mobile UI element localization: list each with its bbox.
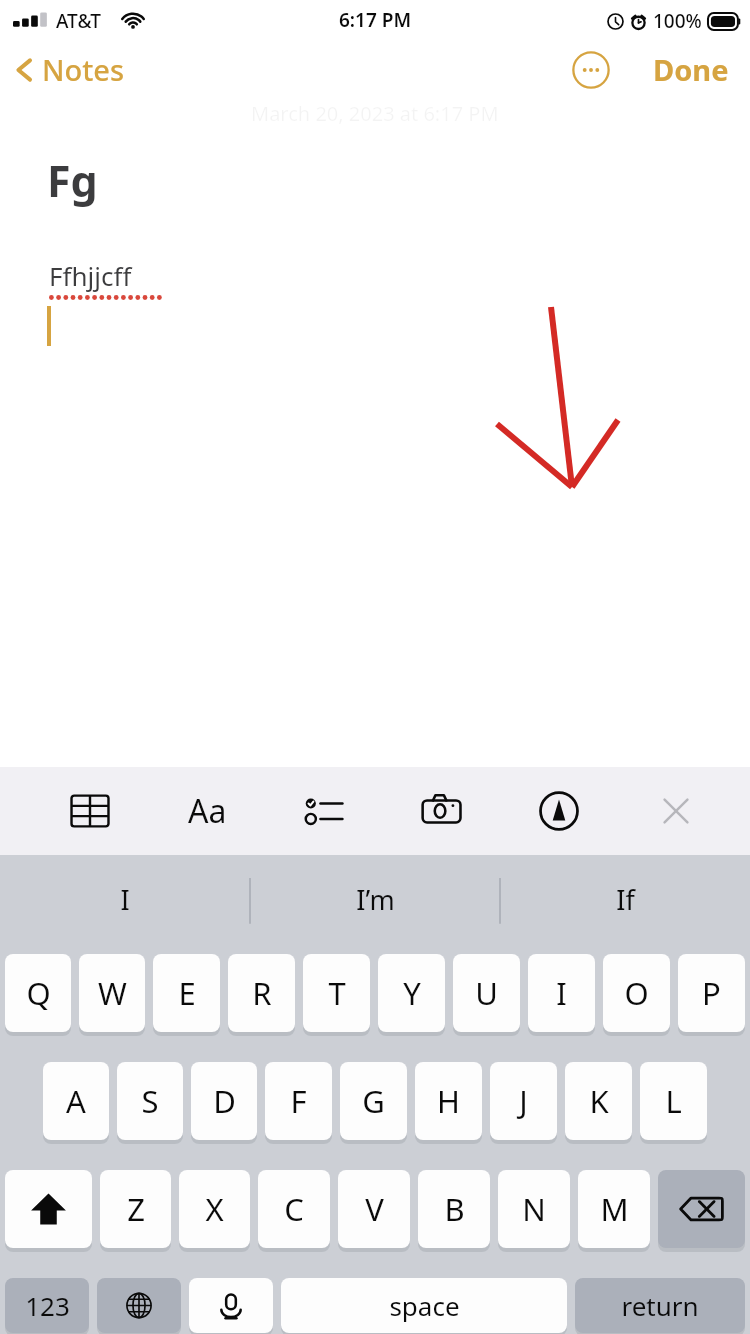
- button[interactable]: W: [79, 954, 145, 1034]
- button[interactable]: Text format: [179, 783, 235, 839]
- button[interactable]: O: [603, 954, 670, 1034]
- staticText: Ffhjjcff: [49, 258, 132, 293]
- staticText: Q: [26, 972, 51, 1014]
- staticText: O: [624, 972, 649, 1014]
- button[interactable]: M: [578, 1170, 650, 1250]
- button[interactable]: G: [340, 1062, 407, 1142]
- button[interactable]: Markup: [531, 783, 587, 839]
- staticText: N: [522, 1188, 546, 1230]
- staticText: H: [437, 1080, 460, 1122]
- button[interactable]: If: [500, 855, 750, 943]
- staticText: J: [519, 1080, 528, 1122]
- button[interactable]: Y: [378, 954, 445, 1034]
- staticText: T: [328, 972, 346, 1014]
- staticText: space: [389, 1288, 460, 1323]
- staticText: Aa: [188, 789, 227, 833]
- staticText: Fg: [47, 151, 98, 210]
- staticText: L: [665, 1080, 682, 1122]
- button[interactable]: B: [418, 1170, 490, 1250]
- staticText: I: [556, 972, 567, 1014]
- button[interactable]: Dictation: [189, 1278, 273, 1334]
- button[interactable]: Notes: [14, 50, 131, 89]
- staticText: P: [702, 972, 721, 1014]
- button[interactable]: return: [575, 1278, 745, 1334]
- button[interactable]: E: [153, 954, 220, 1034]
- button[interactable]: S: [117, 1062, 183, 1142]
- staticText: S: [141, 1080, 159, 1122]
- button[interactable]: U: [453, 954, 520, 1034]
- button[interactable]: Backspace: [658, 1170, 745, 1250]
- staticText: March 20, 2023 at 6:17 PM: [251, 100, 499, 127]
- staticText: X: [205, 1188, 224, 1230]
- staticText: U: [475, 972, 498, 1014]
- button[interactable]: J: [490, 1062, 557, 1142]
- staticText: I: [120, 881, 130, 918]
- button[interactable]: Table: [62, 783, 118, 839]
- button[interactable]: I: [0, 855, 250, 943]
- button[interactable]: D: [191, 1062, 257, 1142]
- staticText: 6:17 PM: [339, 7, 412, 33]
- staticText: 123: [25, 1288, 70, 1323]
- staticText: D: [213, 1080, 236, 1122]
- button[interactable]: V: [338, 1170, 410, 1250]
- button[interactable]: Next keyboard: [97, 1278, 181, 1334]
- button[interactable]: space: [281, 1278, 567, 1334]
- button[interactable]: H: [415, 1062, 482, 1142]
- staticText: Z: [127, 1188, 145, 1230]
- button[interactable]: Close keyboard: [648, 783, 704, 839]
- staticText: W: [98, 972, 127, 1014]
- button[interactable]: Z: [100, 1170, 171, 1250]
- button[interactable]: X: [179, 1170, 250, 1250]
- staticText: return: [621, 1288, 699, 1323]
- staticText: C: [284, 1188, 304, 1230]
- staticText: F: [290, 1080, 307, 1122]
- button[interactable]: A: [43, 1062, 109, 1142]
- staticText: E: [178, 972, 196, 1014]
- staticText: AT&T: [56, 8, 101, 34]
- button[interactable]: Q: [5, 954, 71, 1034]
- button[interactable]: Checklist: [296, 783, 352, 839]
- button[interactable]: 123: [5, 1278, 89, 1334]
- staticText: V: [365, 1188, 384, 1230]
- button[interactable]: I’m: [250, 855, 500, 943]
- button[interactable]: I: [528, 954, 595, 1034]
- button[interactable]: Done: [650, 44, 732, 95]
- button[interactable]: C: [258, 1170, 330, 1250]
- button[interactable]: P: [678, 954, 745, 1034]
- staticText: I’m: [356, 881, 395, 918]
- staticText: M: [600, 1188, 629, 1230]
- button[interactable]: L: [640, 1062, 707, 1142]
- button[interactable]: Camera: [414, 783, 470, 839]
- button[interactable]: F: [265, 1062, 332, 1142]
- button[interactable]: R: [228, 954, 295, 1034]
- staticText: A: [66, 1080, 86, 1122]
- staticText: 100%: [653, 8, 702, 34]
- staticText: K: [589, 1080, 609, 1122]
- button[interactable]: K: [565, 1062, 632, 1142]
- staticText: If: [616, 881, 635, 918]
- button[interactable]: N: [498, 1170, 570, 1250]
- staticText: G: [362, 1080, 385, 1122]
- staticText: B: [444, 1188, 465, 1230]
- staticText: R: [252, 972, 272, 1014]
- staticText: Notes: [42, 50, 125, 89]
- staticText: Done: [653, 50, 729, 89]
- button[interactable]: More options: [568, 47, 614, 93]
- button[interactable]: Shift: [5, 1170, 92, 1250]
- button[interactable]: T: [303, 954, 370, 1034]
- staticText: Y: [403, 972, 421, 1014]
